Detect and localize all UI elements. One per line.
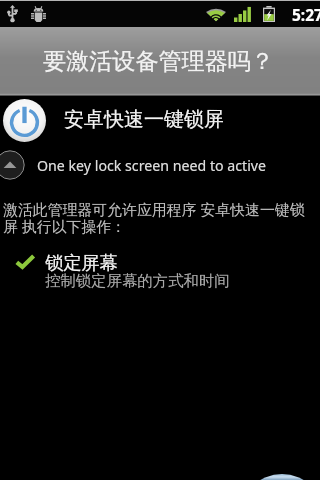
staticText: One key lock screen need to active — [37, 156, 267, 175]
staticText: 控制锁定屏幕的方式和时间 — [45, 271, 230, 290]
staticText: 要激活设备管理器吗？ — [43, 47, 274, 76]
staticText: 锁定屏幕 — [45, 251, 118, 274]
button[interactable]: Collapse details — [0, 150, 320, 180]
staticText: 5:27 — [292, 4, 320, 25]
other: Collapse details — [0, 150, 25, 180]
staticText: 安卓快速一键锁屏 — [64, 107, 224, 132]
staticText: 激活此管理器可允许应用程序 安卓快速一键锁屏 执行以下操作： — [3, 199, 309, 237]
